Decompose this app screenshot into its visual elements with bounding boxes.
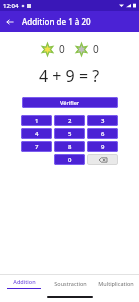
staticText: 12:04 [3, 2, 19, 10]
button[interactable]: Soustraction [47, 275, 93, 292]
staticText: 1 [35, 117, 39, 125]
button[interactable]: 7 [21, 141, 52, 152]
staticText: 7 [35, 143, 39, 151]
staticText: 8 [68, 143, 72, 151]
staticText: 0 [93, 42, 99, 56]
button[interactable]: 6 [87, 128, 118, 139]
staticText: Vérifier [60, 99, 80, 106]
staticText: 4 [35, 130, 39, 138]
button[interactable]: Addition [0, 275, 47, 292]
staticText: 9 [101, 143, 105, 151]
staticText: 4 + 9 = ? [39, 65, 100, 87]
button[interactable]: 1 [21, 115, 52, 126]
staticText: 2 [68, 117, 72, 125]
button[interactable]: 4 [21, 128, 52, 139]
button[interactable]: 9 [87, 141, 118, 152]
button[interactable]: Back [2, 14, 18, 30]
button[interactable]: 3 [87, 115, 118, 126]
button[interactable]: Vérifier [22, 97, 118, 108]
staticText: Multiplication [98, 280, 134, 287]
staticText: Addition [13, 278, 36, 285]
button[interactable]: Multiplication [93, 275, 139, 292]
staticText: 5 [68, 130, 72, 138]
staticText: 0 [68, 156, 72, 164]
staticText: 6 [101, 130, 105, 138]
button[interactable]: Backspace [87, 154, 118, 165]
button[interactable]: 0 [54, 154, 85, 165]
staticText: Addition de 1 à 20 [22, 16, 91, 27]
button[interactable]: 8 [54, 141, 85, 152]
staticText: 0 [59, 42, 65, 56]
button[interactable]: 5 [54, 128, 85, 139]
button[interactable]: 2 [54, 115, 85, 126]
staticText: 3 [101, 117, 105, 125]
staticText: Soustraction [54, 280, 87, 287]
